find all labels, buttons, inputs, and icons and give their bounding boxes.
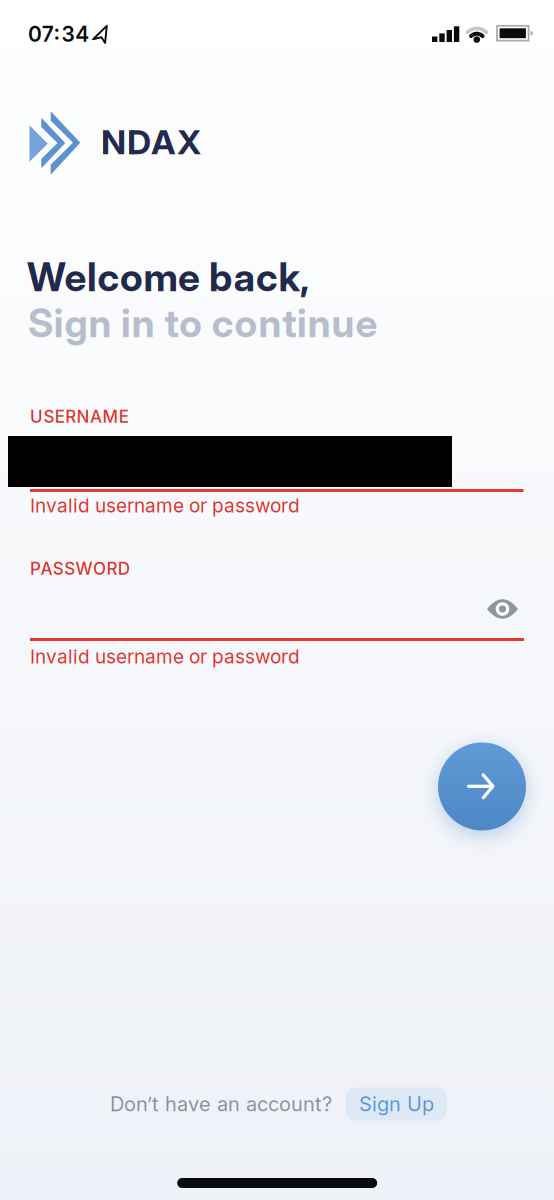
staticText: Sign in to continue: [28, 299, 377, 347]
staticText: Don’t have an account?: [110, 1092, 332, 1116]
staticText: Welcome back,: [27, 253, 310, 301]
button[interactable]: Show password: [0, 0, 554, 1200]
button[interactable]: Sign in: [438, 742, 526, 830]
staticText: Sign Up: [359, 1092, 434, 1116]
button[interactable]: Sign Up: [346, 1087, 447, 1121]
staticText: Invalid username or password: [30, 645, 300, 668]
staticText: NDAX: [101, 121, 201, 162]
staticText: PASSWORD: [30, 558, 130, 579]
staticText: 07:34: [28, 21, 89, 47]
staticText: Invalid username or password: [30, 494, 300, 517]
staticText: USERNAME: [30, 406, 129, 427]
